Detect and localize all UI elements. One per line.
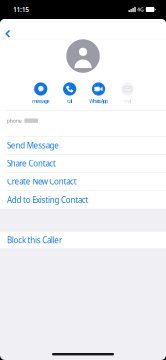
button[interactable]: phone xyxy=(0,111,166,137)
staticText: mail xyxy=(124,97,131,104)
button[interactable]: message xyxy=(26,82,55,104)
button[interactable]: Share Contact xyxy=(0,155,166,173)
button[interactable]: Send Message xyxy=(0,137,166,155)
staticText: Send Message xyxy=(7,140,59,151)
button[interactable]: WhatsApp xyxy=(84,82,113,104)
button[interactable]: mail xyxy=(113,82,142,104)
staticText: phone xyxy=(7,117,22,124)
staticText: Create New Contact xyxy=(7,176,77,187)
staticText: call xyxy=(67,97,72,104)
button[interactable]: call xyxy=(55,82,84,104)
staticText: 4G xyxy=(137,6,144,13)
staticText: Add to Existing Contact xyxy=(7,194,88,205)
button[interactable]: Create New Contact xyxy=(0,173,166,191)
button[interactable]: Add to Existing Contact xyxy=(0,191,166,209)
button[interactable]: Block this Caller xyxy=(0,232,166,248)
button[interactable]: Back xyxy=(0,19,17,39)
staticText: 11:15 xyxy=(13,5,29,14)
staticText: message xyxy=(32,97,50,104)
staticText: Share Contact xyxy=(7,158,56,169)
staticText: Block this Caller xyxy=(7,235,62,245)
staticText: WhatsApp xyxy=(89,97,108,104)
